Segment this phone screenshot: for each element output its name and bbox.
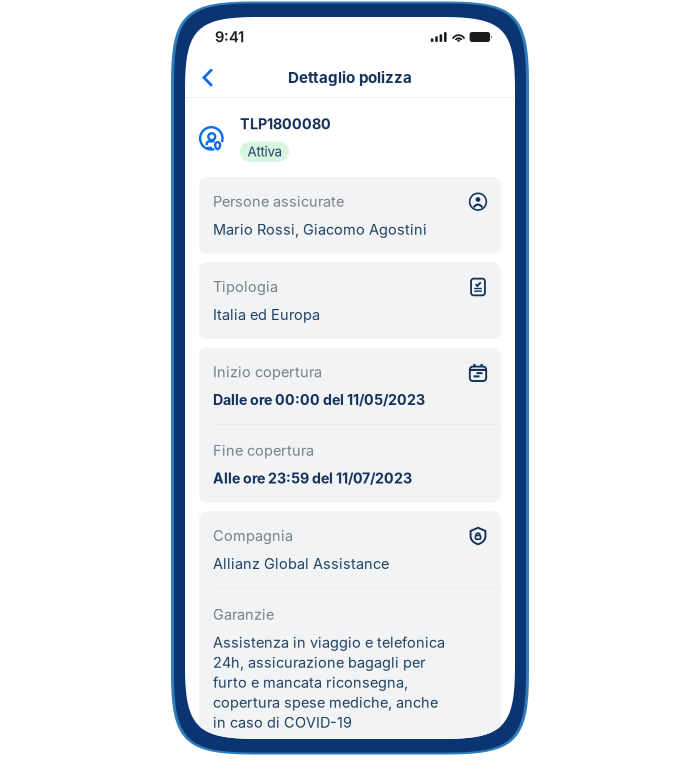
staticText: Assistenza in viaggio e telefonica 24h, … (213, 634, 445, 731)
staticText: Tipologia (213, 278, 278, 295)
button[interactable]: Back (191, 59, 225, 95)
staticText: Garanzie (213, 606, 274, 623)
staticText: Italia ed Europa (213, 306, 320, 323)
staticText: Mario Rossi, Giacomo Agostini (213, 221, 427, 238)
staticText: Persone assicurate (213, 193, 344, 210)
staticText: Dalle ore 00:00 del 11/05/2023 (213, 391, 425, 408)
staticText: Fine copertura (213, 442, 314, 459)
staticText: Inizio copertura (213, 363, 322, 381)
staticText: Alle ore 23:59 del 11/07/2023 (213, 470, 412, 487)
staticText: Dettaglio polizza (288, 68, 412, 87)
staticText: Allianz Global Assistance (213, 555, 389, 572)
staticText: Attiva (247, 144, 281, 160)
staticText: Compagnia (213, 527, 293, 544)
staticText: 9:41 (215, 28, 244, 46)
staticText: TLP1800080 (240, 115, 331, 133)
